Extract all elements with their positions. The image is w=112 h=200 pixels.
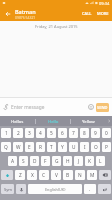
staticText: Sym (4, 187, 12, 192)
staticText: 09876 54321 (15, 15, 36, 20)
staticText: S (22, 158, 25, 165)
button[interactable]: T (47, 142, 56, 152)
staticText: P (105, 144, 108, 151)
button[interactable]: Voice input (16, 184, 26, 194)
staticText: K (88, 158, 91, 165)
button[interactable]: Shift (1, 170, 13, 180)
button[interactable]: B (63, 170, 73, 180)
button[interactable]: Enter (98, 184, 111, 194)
staticText: I (84, 144, 86, 151)
staticText: V (55, 172, 58, 179)
button[interactable]: D (30, 156, 39, 166)
button[interactable]: O (91, 142, 100, 152)
staticText: English(UK) (45, 187, 66, 192)
staticText: Q (4, 144, 8, 151)
staticText: SEND (97, 105, 108, 110)
staticText: J (78, 158, 80, 165)
button[interactable]: MORE (94, 6, 112, 21)
staticText: M (90, 172, 95, 179)
button[interactable]: Emoji (85, 98, 96, 116)
staticText: E (28, 144, 31, 151)
button[interactable]: Q (1, 142, 11, 152)
staticText: W (16, 144, 21, 151)
button[interactable]: Back (0, 6, 15, 21)
staticText: . (89, 186, 91, 193)
staticText: 8 (83, 130, 86, 137)
staticText: 09:34 (99, 1, 110, 6)
staticText: O (94, 144, 98, 151)
staticText: C (42, 172, 46, 179)
button[interactable]: W (13, 142, 23, 152)
button[interactable]: P (102, 142, 111, 152)
button[interactable]: N (75, 170, 85, 180)
button[interactable]: . (84, 184, 96, 194)
button[interactable]: J (74, 156, 83, 166)
button[interactable]: CALL (80, 6, 94, 21)
staticText: D (33, 158, 37, 165)
button[interactable]: 1 (1, 128, 11, 138)
button[interactable]: I (80, 142, 89, 152)
button[interactable]: C (39, 170, 49, 180)
staticText: T (50, 144, 53, 151)
button[interactable]: Backspace (99, 170, 111, 180)
staticText: Y (61, 144, 64, 151)
button[interactable]: 2 (13, 128, 23, 138)
button[interactable]: English(UK) (28, 184, 82, 194)
staticText: 7 (72, 130, 75, 137)
button[interactable]: 9 (91, 128, 100, 138)
staticText: Hello (48, 118, 59, 124)
staticText: U (72, 144, 76, 151)
staticText: Yellow (82, 118, 95, 124)
button[interactable]: 6 (58, 128, 67, 138)
staticText: L (99, 158, 102, 165)
staticText: 6 (61, 130, 64, 137)
button[interactable]: More suggestions (105, 116, 112, 126)
staticText: CALL (82, 11, 92, 16)
staticText: X (31, 172, 34, 179)
staticText: Z (19, 172, 22, 179)
button[interactable]: 7 (69, 128, 78, 138)
button[interactable]: 8 (80, 128, 89, 138)
button[interactable]: L (96, 156, 105, 166)
staticText: 0 (105, 130, 108, 137)
button[interactable]: F (41, 156, 50, 166)
staticText: G (55, 158, 59, 165)
staticText: 4 (39, 130, 42, 137)
staticText: MORE (97, 11, 109, 16)
button[interactable]: 3 (25, 128, 34, 138)
staticText: 2 (17, 130, 20, 137)
staticText: Friday, 21 August 2015 (35, 24, 78, 29)
button[interactable]: Y (58, 142, 67, 152)
button[interactable]: Sym (1, 184, 14, 194)
staticText: A (11, 158, 15, 165)
button[interactable]: 0 (102, 128, 111, 138)
button[interactable]: 4 (36, 128, 45, 138)
staticText: F (44, 158, 47, 165)
button[interactable]: A (8, 156, 17, 166)
button[interactable]: M (87, 170, 97, 180)
button[interactable]: Attach (0, 98, 11, 116)
button[interactable]: G (52, 156, 61, 166)
staticText: 3 (28, 130, 31, 137)
button[interactable]: K (85, 156, 94, 166)
button[interactable]: 5 (47, 128, 56, 138)
button[interactable]: E (25, 142, 34, 152)
button[interactable]: Yellow (71, 116, 105, 126)
staticText: R (39, 144, 42, 151)
button[interactable]: V (51, 170, 61, 180)
staticText: Hellas (11, 118, 24, 124)
button[interactable]: Hellas (0, 116, 35, 126)
staticText: N (78, 172, 82, 179)
staticText: 9 (94, 130, 97, 137)
button[interactable]: H (63, 156, 72, 166)
button[interactable]: Hello (36, 116, 70, 126)
button[interactable]: SEND (96, 103, 109, 112)
button[interactable]: R (36, 142, 45, 152)
staticText: B (66, 172, 70, 179)
button[interactable]: Z (15, 170, 25, 180)
staticText: 5 (50, 130, 53, 137)
button[interactable]: X (27, 170, 37, 180)
button[interactable]: S (19, 156, 28, 166)
staticText: H (66, 158, 70, 165)
button[interactable]: U (69, 142, 78, 152)
